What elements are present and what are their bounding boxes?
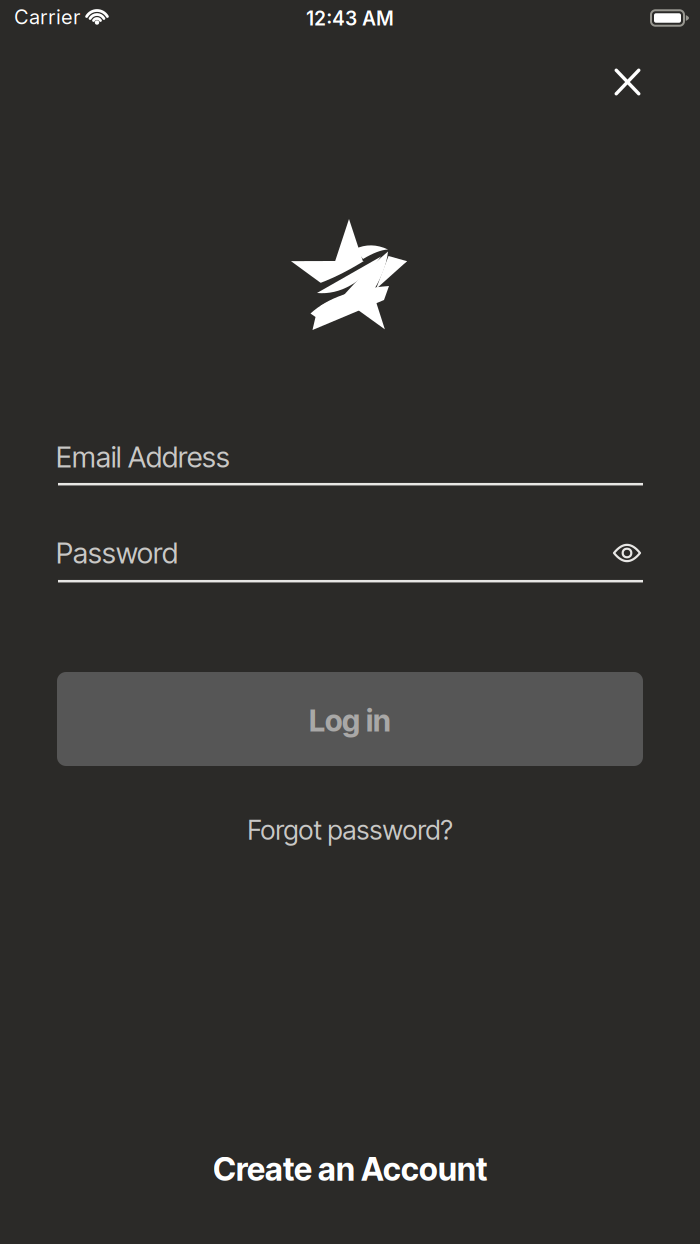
staticText: Create an Account <box>213 1150 487 1188</box>
staticText: Carrier <box>14 5 80 29</box>
staticText: Log in <box>309 702 391 739</box>
staticText: Forgot password? <box>247 814 452 846</box>
button[interactable]: Email Address <box>56 429 642 485</box>
button[interactable] <box>602 56 653 108</box>
button[interactable]: Password <box>56 525 642 581</box>
button[interactable]: Create an Account <box>205 1142 495 1196</box>
staticText: Password <box>56 536 178 570</box>
staticText: Email Address <box>56 440 230 474</box>
button[interactable]: Log in <box>57 672 643 766</box>
button[interactable]: Forgot password? <box>239 806 460 854</box>
button[interactable] <box>613 544 641 562</box>
staticText: 12:43 AM <box>306 7 394 30</box>
